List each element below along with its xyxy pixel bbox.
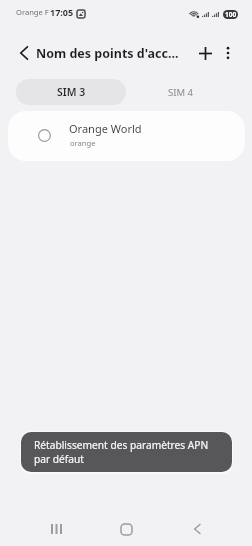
button[interactable]: More options	[217, 42, 239, 64]
button[interactable]: Add	[194, 42, 216, 64]
button[interactable]: Rétablissement des paramètres APN par dé…	[21, 432, 232, 472]
button[interactable]: SIM 4	[125, 79, 235, 105]
staticText: Orange World	[69, 121, 142, 136]
staticText: 100	[225, 10, 237, 19]
button[interactable]: Recents	[36, 509, 76, 546]
staticText: SIM 3	[57, 85, 86, 99]
button[interactable]: Back	[13, 42, 35, 64]
staticText: orange	[70, 138, 96, 148]
staticText: Rétablissement des paramètres APN par dé…	[34, 438, 209, 466]
button[interactable]: Home	[106, 509, 146, 546]
staticText: Nom des points d'acc...	[36, 45, 179, 62]
button[interactable]: Back	[177, 509, 217, 546]
staticText: SIM 4	[168, 86, 193, 99]
button[interactable]: Orange World	[8, 111, 245, 161]
staticText: Orange F	[16, 7, 49, 17]
staticText: 17:05	[50, 6, 74, 18]
button[interactable]: SIM 3	[16, 79, 126, 105]
